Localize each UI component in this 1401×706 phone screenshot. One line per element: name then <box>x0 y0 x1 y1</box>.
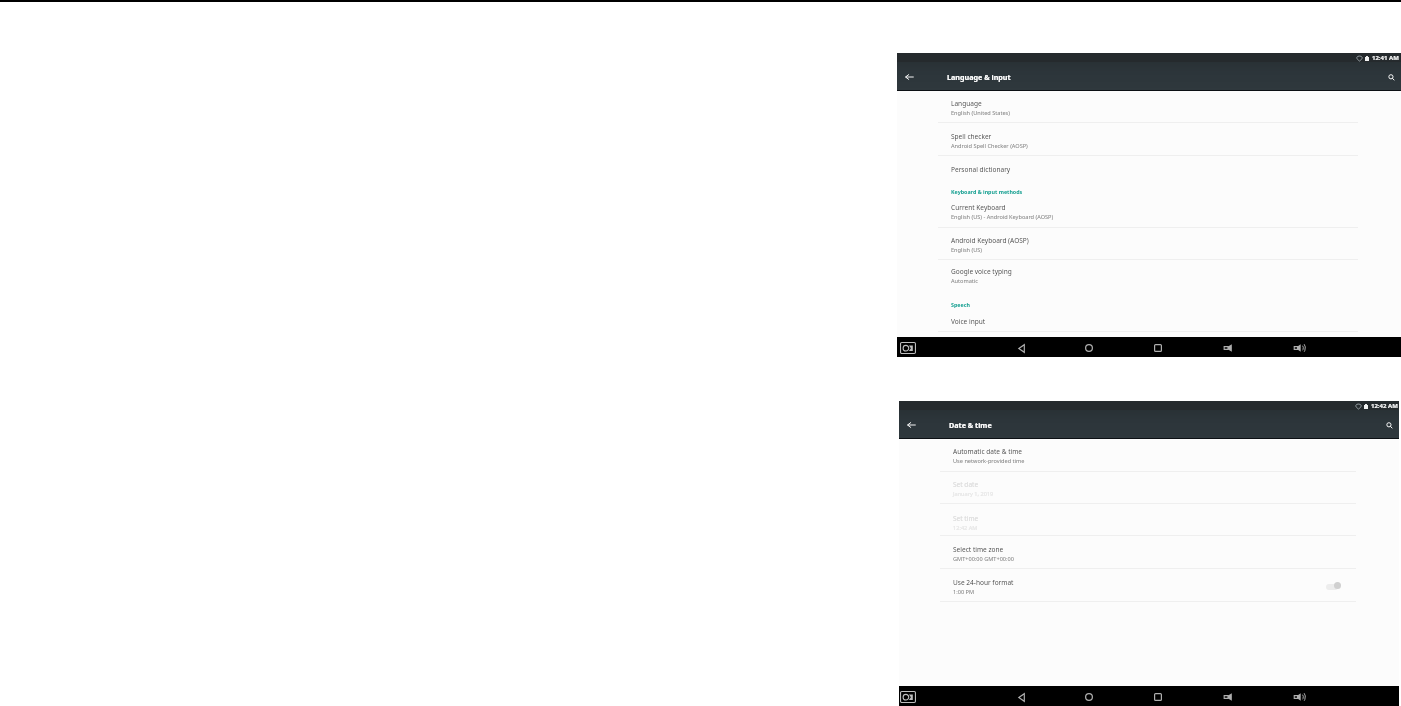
staticText: GMT+00:00 GMT+00:00 <box>953 555 1014 563</box>
staticText: Automatic <box>951 277 978 285</box>
button[interactable]: Personal dictionary <box>897 156 1401 179</box>
staticText: Use 24-hour format <box>953 578 1014 587</box>
button[interactable]: Volume down <box>1219 688 1237 706</box>
staticText: 12:41 AM <box>1372 54 1399 62</box>
button[interactable]: Screenshot <box>900 691 916 703</box>
button[interactable]: Recents <box>1149 688 1167 706</box>
staticText: English (US) <box>951 246 983 254</box>
button[interactable]: Use 24-hour format <box>1326 582 1341 589</box>
button[interactable]: Automatic date & time <box>899 439 1399 471</box>
button[interactable]: Google voice typing <box>897 260 1401 292</box>
staticText: Speech <box>951 301 970 308</box>
staticText: 1:00 PM <box>953 588 975 596</box>
staticText: Select time zone <box>953 545 1004 554</box>
button[interactable]: Voice input <box>897 308 1401 332</box>
staticText: January 1, 2019 <box>953 490 994 498</box>
staticText: Personal dictionary <box>951 165 1011 174</box>
button[interactable]: Android Keyboard (AOSP) <box>897 228 1401 260</box>
staticText: Spell checker <box>951 132 992 141</box>
staticText: Language <box>951 99 982 108</box>
button[interactable]: Volume up <box>1290 688 1308 706</box>
staticText: Current Keyboard <box>951 203 1006 212</box>
staticText: English (US) - Android Keyboard (AOSP) <box>951 213 1054 221</box>
button[interactable]: Current Keyboard <box>897 195 1401 228</box>
staticText: 12:42 AM <box>953 524 978 532</box>
button[interactable]: Screenshot <box>900 342 916 354</box>
button[interactable]: Back <box>904 418 918 432</box>
staticText: English (United States) <box>951 109 1010 117</box>
button[interactable]: Back <box>902 70 916 84</box>
staticText: 12:42 AM <box>1371 402 1398 410</box>
button[interactable]: Language <box>897 91 1401 123</box>
button[interactable]: Select time zone <box>899 536 1399 569</box>
button[interactable]: Search <box>1382 418 1396 432</box>
staticText: Voice input <box>951 317 986 326</box>
button[interactable]: Home <box>1080 688 1098 706</box>
button[interactable]: Back <box>1012 339 1030 357</box>
button[interactable]: Recents <box>1149 339 1167 357</box>
button[interactable]: Back <box>1012 688 1030 706</box>
staticText: Android Keyboard (AOSP) <box>951 236 1029 245</box>
staticText: Automatic date & time <box>953 447 1023 456</box>
staticText: Keyboard & input methods <box>951 188 1023 195</box>
staticText: Use network-provided time <box>953 457 1025 465</box>
staticText: Date & time <box>949 420 992 430</box>
button[interactable]: Search <box>1384 70 1398 84</box>
staticText: Set date <box>953 480 979 489</box>
button[interactable]: Volume up <box>1290 339 1308 357</box>
button[interactable]: Spell checker <box>897 123 1401 156</box>
staticText: Set time <box>953 514 979 523</box>
staticText: Google voice typing <box>951 267 1012 276</box>
button[interactable]: Use 24-hour format <box>899 569 1399 602</box>
button[interactable]: Home <box>1080 339 1098 357</box>
staticText: Android Spell Checker (AOSP) <box>951 142 1028 150</box>
button[interactable]: Volume down <box>1219 339 1237 357</box>
staticText: Language & input <box>947 72 1011 82</box>
